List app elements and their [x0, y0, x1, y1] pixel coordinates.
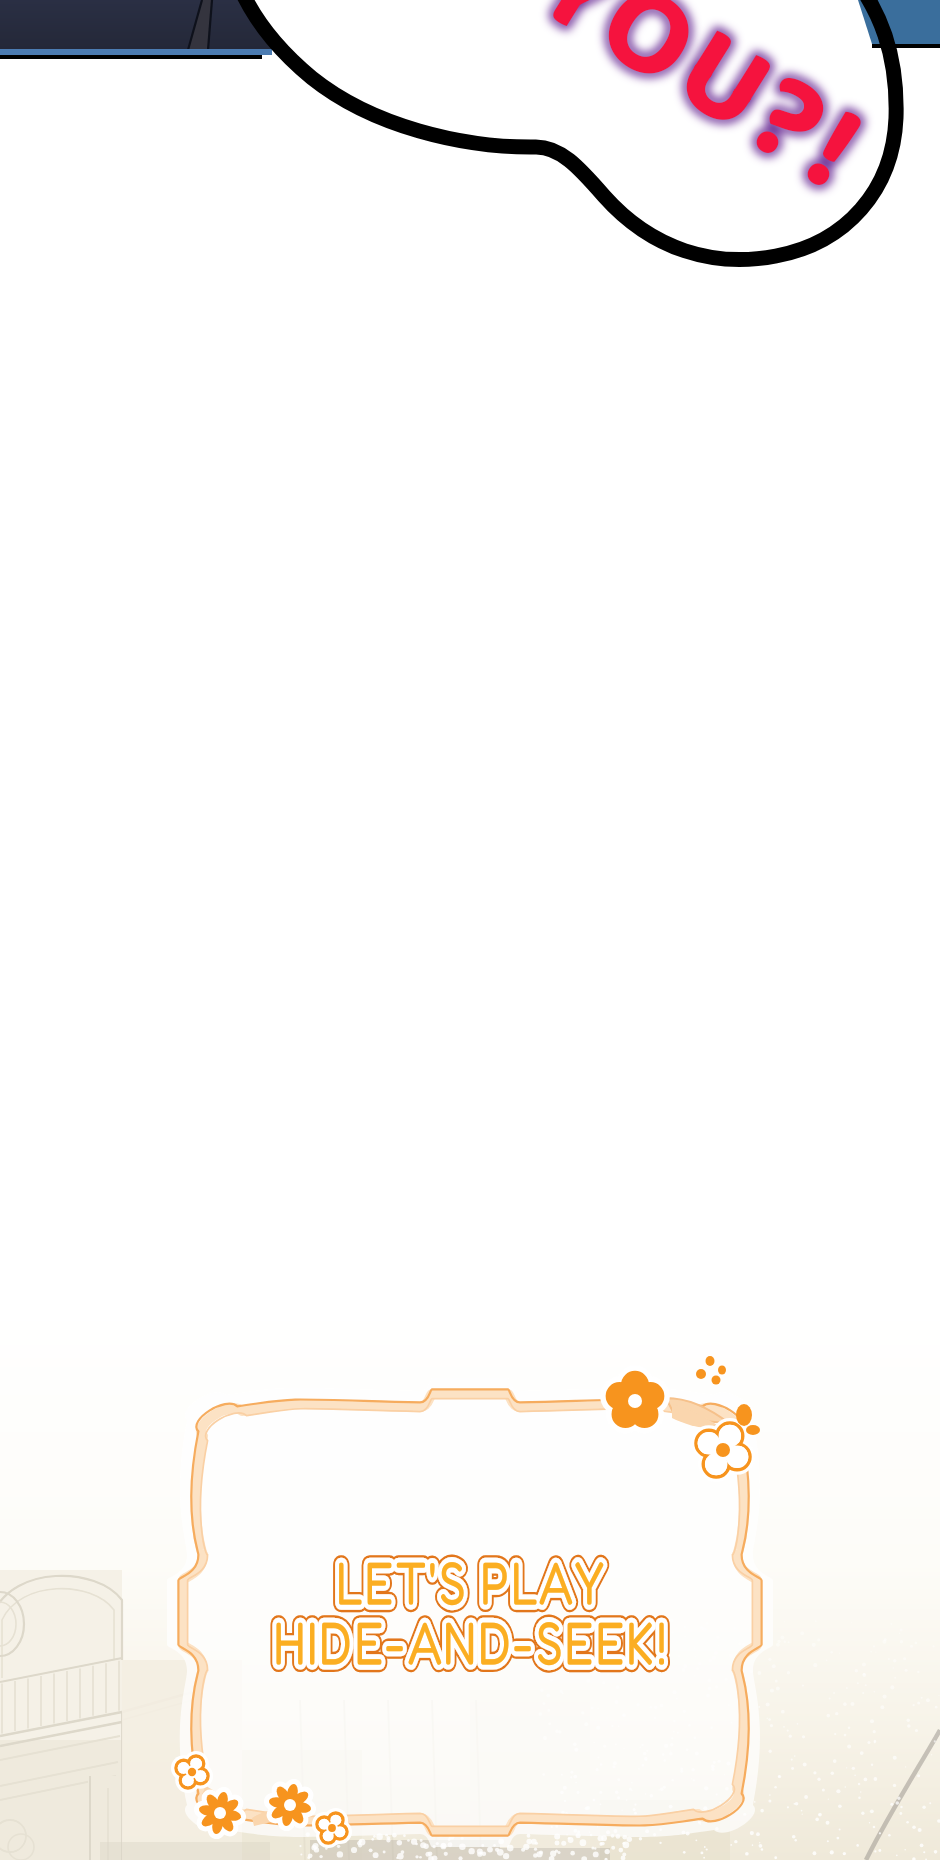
button[interactable]: Comic panel, tap to show controls: [0, 0, 940, 1860]
